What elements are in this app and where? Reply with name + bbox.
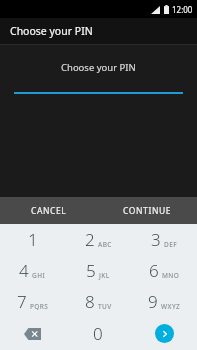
button[interactable]: Backspace xyxy=(0,317,65,350)
staticText: 3 xyxy=(151,228,161,251)
staticText: WXYZ xyxy=(161,302,181,311)
staticText: 6 xyxy=(149,259,159,282)
staticText: 1 xyxy=(28,228,38,251)
button[interactable]: 4 xyxy=(0,255,65,286)
button[interactable]: 5 xyxy=(65,255,131,286)
staticText: 0 xyxy=(93,322,103,345)
staticText: MNO xyxy=(162,271,180,280)
staticText: Choose your PIN xyxy=(61,61,136,74)
staticText: JKL xyxy=(99,271,110,280)
staticText: 8 xyxy=(85,290,95,313)
staticText: 7 xyxy=(17,290,27,313)
button[interactable]: 0 xyxy=(65,317,131,350)
staticText: Choose your PIN xyxy=(10,24,93,38)
staticText: 5 xyxy=(86,259,96,282)
button[interactable]: 2 xyxy=(65,224,131,255)
staticText: 12:00 xyxy=(172,4,193,15)
staticText: 2 xyxy=(85,228,95,251)
button[interactable]: 6 xyxy=(131,255,197,286)
staticText: ABC xyxy=(98,240,112,249)
button[interactable]: 8 xyxy=(65,286,131,317)
button[interactable]: 3 xyxy=(131,224,197,255)
staticText: DEF xyxy=(164,240,178,249)
button[interactable]: CONTINUE xyxy=(98,197,197,224)
staticText: PQRS xyxy=(30,302,49,311)
button[interactable]: 1 xyxy=(0,224,65,255)
staticText: 4 xyxy=(19,259,29,282)
staticText: CONTINUE xyxy=(123,205,172,217)
button[interactable]: CANCEL xyxy=(0,197,98,224)
staticText: 9 xyxy=(148,290,158,313)
staticText: CANCEL xyxy=(31,205,67,217)
button[interactable]: 9 xyxy=(131,286,197,317)
staticText: GHI xyxy=(32,271,46,280)
staticText: TUV xyxy=(98,302,112,311)
button[interactable]: Next xyxy=(131,317,197,350)
button[interactable]: 7 xyxy=(0,286,65,317)
